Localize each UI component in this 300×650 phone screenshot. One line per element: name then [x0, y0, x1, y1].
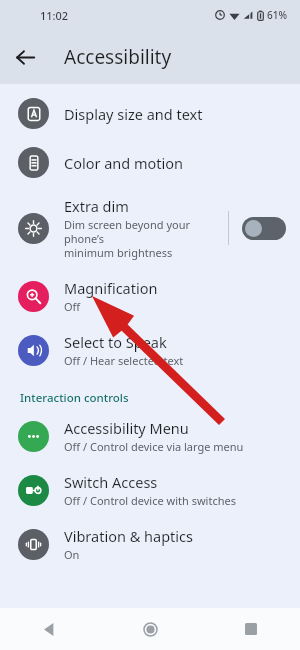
- staticText: Vibration & haptics: [64, 526, 193, 546]
- staticText: Switch Access: [64, 472, 158, 492]
- button[interactable]: Back: [30, 610, 68, 648]
- button[interactable]: Select to Speak: [0, 323, 300, 377]
- staticText: Select to Speak: [64, 332, 167, 352]
- staticText: 11:02: [40, 8, 69, 23]
- staticText: Interaction controls: [20, 390, 129, 406]
- staticText: Display size and text: [64, 104, 203, 124]
- staticText: Color and motion: [64, 153, 184, 173]
- button[interactable]: Display size and text: [0, 89, 300, 138]
- staticText: 61%: [267, 8, 287, 22]
- button[interactable]: Accessibility Menu: [0, 409, 300, 463]
- button[interactable]: Magnification: [0, 269, 300, 323]
- staticText: Magnification: [64, 278, 158, 298]
- staticText: Extra dim: [64, 196, 129, 216]
- staticText: Accessibility: [64, 44, 172, 70]
- staticText: On: [64, 547, 80, 562]
- button[interactable]: Extra dim toggle: [242, 217, 286, 240]
- staticText: Accessibility Menu: [64, 418, 189, 438]
- button[interactable]: Switch Access: [0, 463, 300, 517]
- button[interactable]: Color and motion: [0, 138, 300, 187]
- staticText: Dim screen beyond your phone’s minimum b…: [64, 217, 228, 260]
- button[interactable]: Recent apps: [232, 610, 270, 648]
- staticText: Off / Hear selected text: [64, 353, 184, 368]
- staticText: Off / Control device via large menu: [64, 439, 244, 454]
- button[interactable]: Navigate up: [9, 41, 41, 73]
- button[interactable]: Home: [131, 610, 169, 648]
- staticText: Off / Control device with switches: [64, 493, 236, 508]
- staticText: Off: [64, 299, 81, 314]
- button[interactable]: Vibration & haptics: [0, 517, 300, 571]
- button[interactable]: Extra dim: [0, 187, 300, 269]
